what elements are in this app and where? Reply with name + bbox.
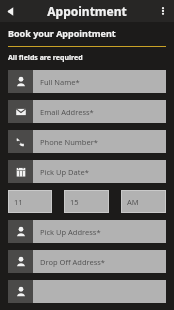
staticText: Book your Appointment: [8, 27, 116, 39]
button[interactable]: Full Name*: [8, 70, 166, 93]
button[interactable]: [8, 280, 166, 303]
staticText: All fields are required: [8, 53, 83, 63]
staticText: Appointment: [47, 3, 127, 19]
staticText: Full Name*: [40, 77, 80, 87]
button[interactable]: Pick Up Address*: [8, 220, 166, 243]
staticText: Pick Up Address*: [40, 227, 101, 237]
button[interactable]: Drop Off Address*: [8, 250, 166, 273]
staticText: 11: [14, 197, 23, 207]
staticText: Email Address*: [40, 107, 94, 117]
button[interactable]: AM: [121, 190, 166, 213]
staticText: Pick Up Date*: [40, 167, 89, 177]
staticText: Drop Off Address*: [40, 257, 106, 267]
button[interactable]: 11: [8, 190, 52, 213]
staticText: 15: [70, 197, 79, 207]
staticText: AM: [127, 197, 139, 207]
button[interactable]: Email Address*: [8, 100, 166, 123]
button[interactable]: Pick Up Date*: [8, 160, 166, 183]
button[interactable]: More options: [152, 0, 174, 22]
button[interactable]: Back: [0, 0, 22, 22]
button[interactable]: 15: [64, 190, 109, 213]
button[interactable]: Phone Number*: [8, 130, 166, 153]
staticText: Phone Number*: [40, 137, 98, 147]
